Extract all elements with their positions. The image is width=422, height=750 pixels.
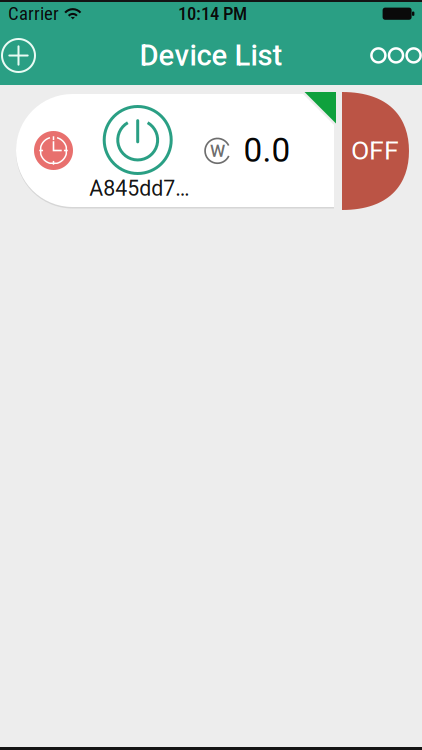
staticText: A845dd7…	[89, 176, 189, 201]
staticText: OFF	[351, 135, 399, 166]
staticText: Carrier	[8, 3, 59, 24]
button[interactable]: Add device	[0, 33, 40, 77]
button[interactable]: Turn off	[342, 92, 409, 210]
staticText: Device List	[139, 38, 282, 73]
staticText: 0.0	[243, 131, 290, 170]
staticText: 10:14 PM	[178, 3, 247, 24]
staticText: W	[210, 141, 225, 161]
button[interactable]: More options	[365, 33, 422, 77]
button[interactable]: Timer	[27, 124, 79, 176]
button[interactable]: Power	[99, 101, 177, 179]
